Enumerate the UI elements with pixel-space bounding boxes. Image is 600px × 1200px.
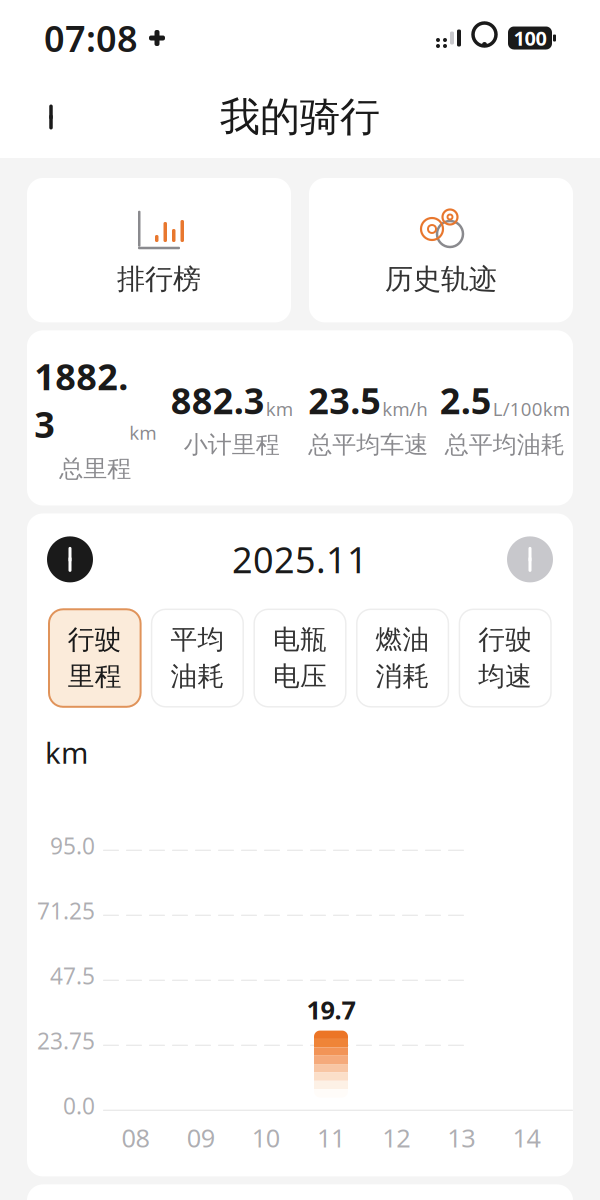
button[interactable]: 电瓶	[254, 609, 346, 707]
staticText: 23.75	[37, 1026, 95, 1056]
button[interactable]: 排行榜	[27, 178, 291, 322]
staticText: 总平均车速	[308, 430, 428, 460]
staticText: 2.5	[440, 376, 492, 424]
staticText: 1882.3	[34, 352, 128, 448]
staticText: 11	[317, 1121, 345, 1154]
staticText: km	[266, 396, 293, 421]
staticText: 消耗	[376, 660, 430, 693]
staticText: 14	[512, 1121, 540, 1154]
staticText: 23.5	[308, 376, 381, 424]
staticText: 排行榜	[117, 262, 201, 296]
staticText: 2025.11	[232, 535, 368, 583]
staticText: 油耗	[170, 660, 224, 693]
staticText: km/h	[382, 396, 428, 421]
button[interactable]: 行驶	[459, 609, 551, 707]
staticText: 07:08	[44, 14, 138, 62]
staticText: 行驶	[478, 623, 532, 656]
staticText: 71.25	[37, 896, 95, 926]
staticText: 0.0	[63, 1091, 95, 1121]
staticText: 均速	[478, 660, 532, 693]
staticText: 电瓶	[273, 623, 327, 656]
staticText: km	[45, 733, 88, 772]
staticText: 08	[122, 1121, 150, 1154]
button[interactable]: 平均	[152, 609, 243, 707]
button[interactable]: 燃油	[357, 609, 448, 707]
staticText: km	[129, 420, 156, 445]
staticText: 行驶	[68, 623, 122, 656]
staticText: 10	[252, 1121, 280, 1154]
staticText: 我的骑行	[220, 92, 380, 141]
staticText: 燃油	[376, 623, 430, 656]
staticText: 100	[513, 25, 546, 51]
staticText: 12	[382, 1121, 410, 1154]
button[interactable]: 历史轨迹	[309, 178, 573, 322]
staticText: 09	[187, 1121, 215, 1154]
staticText: 总平均油耗	[445, 430, 565, 460]
staticText: 里程	[68, 660, 122, 693]
staticText: L/100km	[493, 396, 570, 421]
button[interactable]: 上个月	[47, 536, 93, 582]
staticText: 小计里程	[184, 430, 280, 460]
staticText: 95.0	[50, 831, 95, 861]
button[interactable]: 下个月	[507, 536, 553, 582]
staticText: 电压	[273, 660, 327, 693]
button[interactable]: 行驶	[49, 609, 141, 707]
staticText: 47.5	[50, 961, 95, 991]
staticText: 总里程	[59, 454, 131, 483]
staticText: 882.3	[171, 376, 265, 424]
staticText: 历史轨迹	[385, 262, 497, 296]
staticText: 平均	[170, 623, 224, 656]
staticText: 13	[447, 1121, 475, 1154]
staticText: 19.7	[306, 993, 355, 1026]
button[interactable]: 返回	[24, 90, 78, 144]
